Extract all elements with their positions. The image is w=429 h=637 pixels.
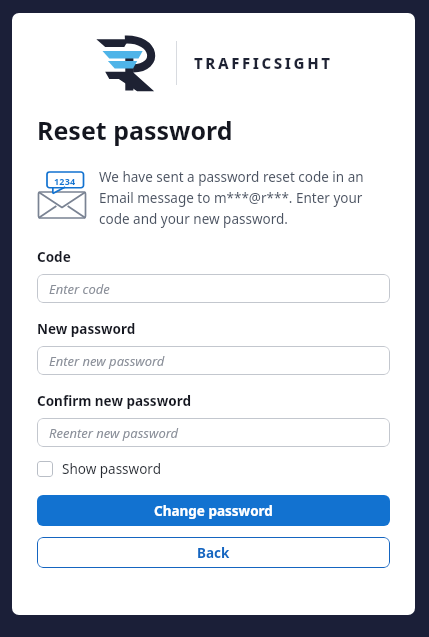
staticText: TRAFFICSIGHT (194, 53, 333, 73)
button[interactable]: Back (37, 537, 390, 568)
staticText: Show password (62, 460, 161, 478)
staticText: Back (197, 544, 230, 562)
staticText: New password (37, 320, 136, 338)
staticText: 1234 (54, 175, 76, 187)
staticText: Enter code (49, 280, 110, 298)
other: TrafficSight logo (95, 33, 163, 93)
staticText: We have sent a password reset code in an… (99, 168, 390, 228)
staticText: Reset password (37, 113, 233, 147)
button[interactable]: Show password (37, 458, 161, 480)
staticText: Confirm new password (37, 392, 191, 410)
button[interactable]: Enter code (37, 274, 390, 303)
staticText: Reenter new password (49, 424, 179, 442)
button[interactable]: Reenter new password (37, 418, 390, 447)
staticText: Enter new password (49, 352, 165, 370)
staticText: Code (37, 248, 71, 266)
button[interactable]: Change password (37, 495, 390, 526)
other: Email with code (37, 171, 87, 221)
button[interactable]: Enter new password (37, 346, 390, 375)
staticText: Change password (154, 502, 273, 520)
